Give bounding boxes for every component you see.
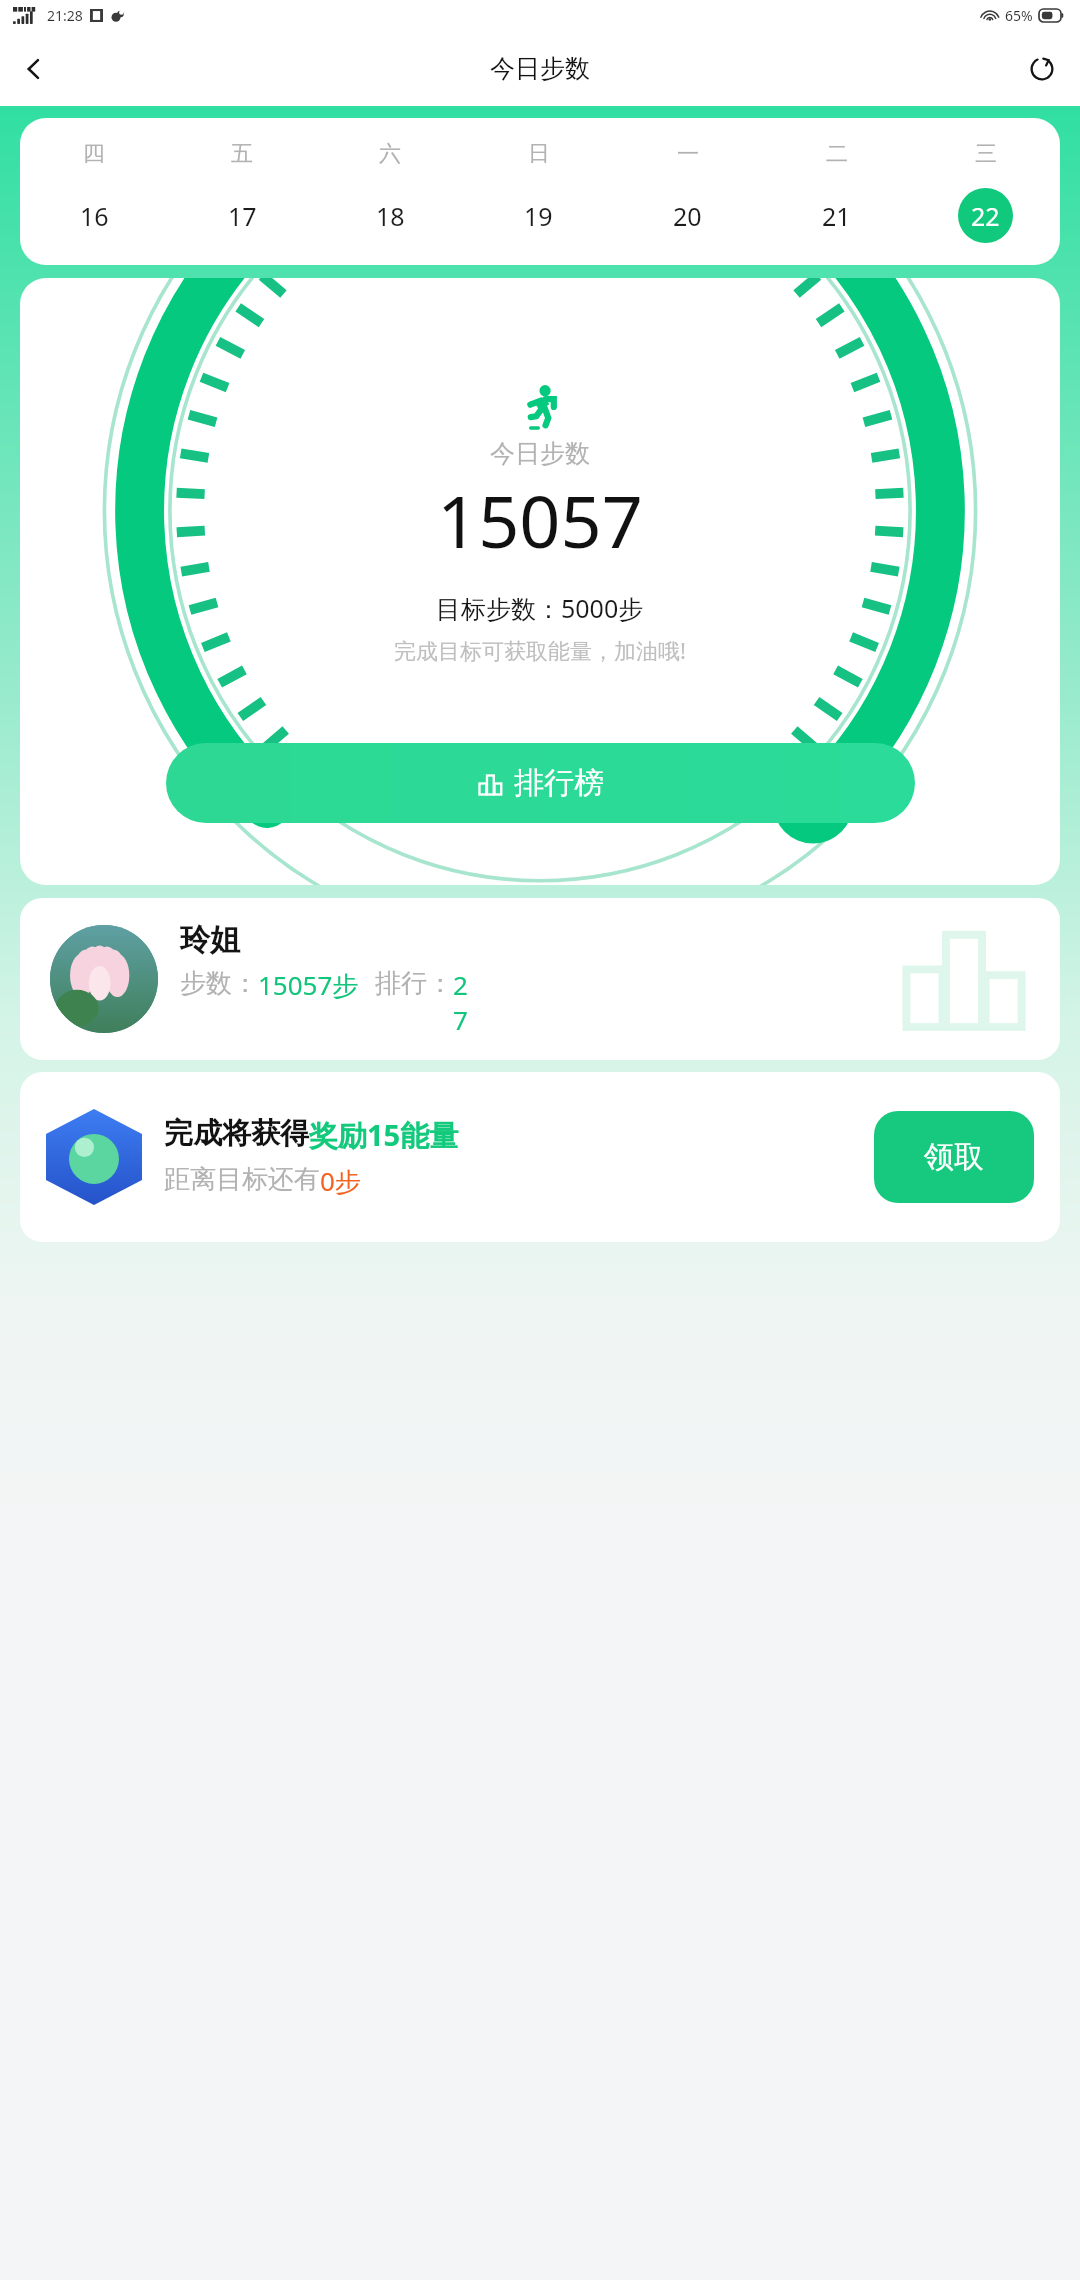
button[interactable]: Back — [6, 41, 62, 97]
staticText: 21:28 — [47, 6, 83, 25]
staticText: 距离目标还有 — [164, 1163, 320, 1196]
staticText: 奖励15能量 — [309, 1115, 459, 1155]
staticText: 17 — [228, 199, 257, 233]
staticText: 15057步 — [258, 967, 359, 1003]
staticText: 18 — [376, 199, 405, 233]
staticText: 完成将获得 — [164, 1115, 309, 1152]
staticText: 玲姐 — [180, 921, 240, 959]
button[interactable]: 17 — [215, 188, 270, 243]
staticText: 领取 — [924, 1138, 984, 1176]
button[interactable]: 22 — [958, 188, 1013, 243]
staticText: 今日步数 — [490, 53, 590, 84]
staticText: 五 — [231, 140, 253, 168]
staticText: 目标步数：5000步 — [436, 591, 644, 625]
staticText: 步数： — [180, 967, 258, 1000]
staticText: 排行： — [375, 967, 453, 1000]
staticText: 一 — [677, 140, 699, 168]
staticText: 二 — [826, 140, 848, 168]
staticText: 21 — [822, 199, 851, 233]
button[interactable]: 排行榜 — [166, 743, 915, 823]
staticText: 15057 — [437, 471, 643, 569]
staticText: 65% — [1005, 6, 1033, 25]
staticText: 四 — [83, 140, 105, 168]
staticText: 日 — [528, 140, 550, 168]
button[interactable]: Share — [1014, 41, 1070, 97]
button[interactable]: 19 — [511, 188, 566, 243]
staticText: 六 — [379, 140, 401, 168]
staticText: 27 — [453, 967, 475, 1037]
staticText: 16 — [80, 199, 109, 233]
button[interactable]: 领取 — [874, 1111, 1034, 1203]
button[interactable]: 21 — [809, 188, 864, 243]
button[interactable]: 四 — [20, 118, 1060, 265]
staticText: 20 — [673, 199, 702, 233]
staticText: 完成目标可获取能量，加油哦! — [394, 635, 686, 665]
staticText: 排行榜 — [514, 764, 604, 802]
staticText: 22 — [971, 199, 1000, 233]
button[interactable]: 16 — [67, 188, 122, 243]
button[interactable]: 18 — [363, 188, 418, 243]
staticText: 0步 — [320, 1163, 361, 1199]
button[interactable]: 玲姐 — [20, 898, 1060, 1060]
staticText: 19 — [524, 199, 553, 233]
button[interactable]: 20 — [660, 188, 715, 243]
staticText: 三 — [975, 140, 997, 168]
staticText: 今日步数 — [490, 438, 590, 469]
